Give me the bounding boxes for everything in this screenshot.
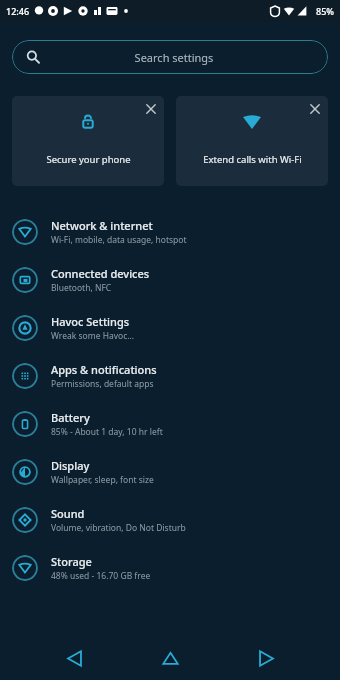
- button[interactable]: Dismiss Secure your phone: [142, 100, 160, 118]
- staticText: Secure your phone: [46, 153, 131, 166]
- button[interactable]: Dismiss Extend calls with Wi-Fi: [306, 100, 324, 118]
- staticText: 12:46: [6, 5, 30, 17]
- staticText: Bluetooth, NFC: [51, 282, 112, 294]
- staticText: Wreak some Havoc...: [51, 330, 135, 342]
- button[interactable]: Display: [0, 448, 340, 496]
- button[interactable]: Dismiss Extend calls with Wi-Fi: [176, 96, 328, 186]
- staticText: Storage: [51, 554, 92, 569]
- staticText: Extend calls with Wi-Fi: [203, 153, 302, 166]
- staticText: Sound: [51, 506, 85, 521]
- staticText: Display: [51, 458, 90, 473]
- staticText: Network & internet: [51, 218, 153, 233]
- staticText: Connected devices: [51, 266, 150, 281]
- staticText: Havoc Settings: [51, 314, 130, 329]
- button[interactable]: Havoc Settings: [0, 304, 340, 352]
- staticText: Permissions, default apps: [51, 378, 154, 390]
- button[interactable]: Network & internet: [0, 208, 340, 256]
- button[interactable]: Battery: [0, 400, 340, 448]
- button[interactable]: Apps & notifications: [0, 352, 340, 400]
- button[interactable]: Sound: [0, 496, 340, 544]
- staticText: Search settings: [30, 50, 318, 65]
- button[interactable]: Back: [52, 636, 96, 680]
- button[interactable]: Dismiss Secure your phone: [12, 96, 164, 186]
- staticText: Wallpaper, sleep, font size: [51, 474, 154, 486]
- staticText: 85%: [316, 5, 334, 17]
- button[interactable]: Home: [148, 636, 192, 680]
- button[interactable]: Search settings: [12, 40, 328, 74]
- staticText: Battery: [51, 410, 90, 425]
- staticText: 48% used - 16.70 GB free: [51, 570, 151, 582]
- button[interactable]: Recent apps: [244, 636, 288, 680]
- staticText: 85% - About 1 day, 10 hr left: [51, 426, 163, 438]
- staticText: Volume, vibration, Do Not Disturb: [51, 522, 186, 534]
- staticText: Wi-Fi, mobile, data usage, hotspot: [51, 234, 187, 246]
- button[interactable]: Storage: [0, 544, 340, 592]
- staticText: Apps & notifications: [51, 362, 157, 377]
- button[interactable]: Connected devices: [0, 256, 340, 304]
